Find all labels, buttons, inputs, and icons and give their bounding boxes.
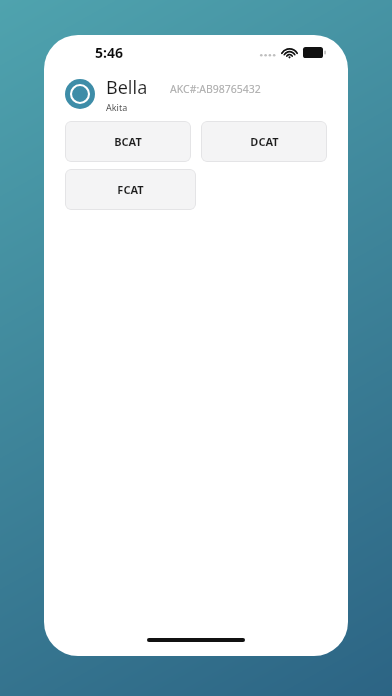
staticText: Bella <box>106 75 148 100</box>
staticText: BCAT <box>114 134 142 149</box>
button[interactable]: FCAT <box>65 169 196 210</box>
button[interactable]: Back <box>65 79 95 109</box>
button[interactable]: BCAT <box>65 121 191 162</box>
staticText: DCAT <box>250 134 279 149</box>
staticText: AKC#:AB98765432 <box>170 82 261 96</box>
staticText: 5:46 <box>95 43 123 62</box>
staticText: Akita <box>106 101 128 113</box>
staticText: FCAT <box>117 182 144 197</box>
button[interactable]: DCAT <box>201 121 327 162</box>
